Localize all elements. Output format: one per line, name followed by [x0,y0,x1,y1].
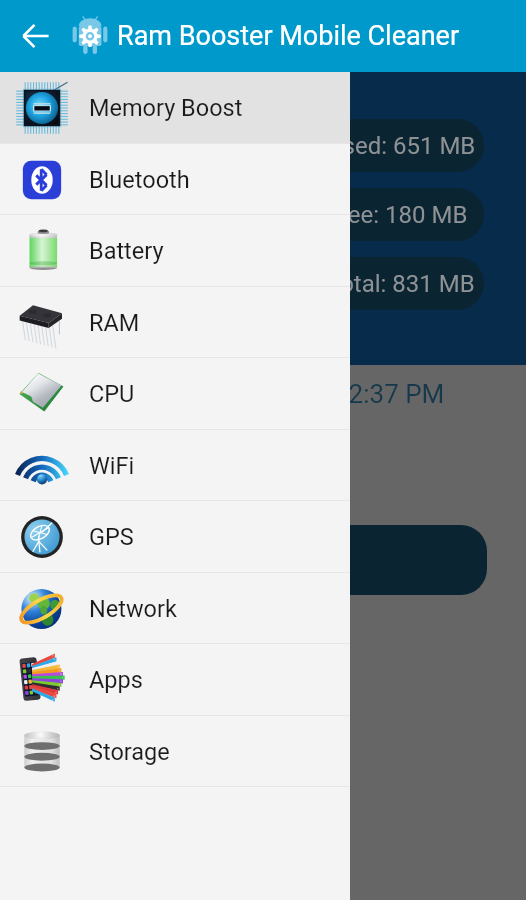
button[interactable]: Back [4,4,68,68]
staticText: Battery [89,237,164,265]
staticText: Ram Booster Mobile Cleaner [117,20,460,52]
button[interactable]: Storage [0,716,350,788]
button[interactable]: RAM [0,287,350,359]
staticText: GPS [89,523,134,551]
button[interactable]: Network [0,573,350,645]
staticText: Used: 651 MB [327,132,476,160]
staticText: CPU [89,380,135,408]
staticText: Total: 831 MB [327,270,475,298]
staticText: 12:37 PM [334,379,445,409]
staticText: Storage [89,738,170,766]
staticText: Apps [89,666,143,694]
button[interactable]: Apps [0,644,350,716]
button[interactable] [42,525,487,595]
staticText: WiFi [89,452,135,480]
staticText: Network [89,595,177,623]
button[interactable]: CPU [0,358,350,430]
button[interactable]: Bluetooth [0,144,350,216]
button[interactable]: Memory Boost [0,72,350,144]
staticText: Memory Boost [89,94,243,122]
button[interactable]: Battery [0,215,350,287]
staticText: Free: 180 MB [327,201,468,229]
button[interactable]: GPS [0,501,350,573]
button[interactable]: WiFi [0,430,350,502]
staticText: RAM [89,309,140,337]
staticText: Bluetooth [89,166,190,194]
